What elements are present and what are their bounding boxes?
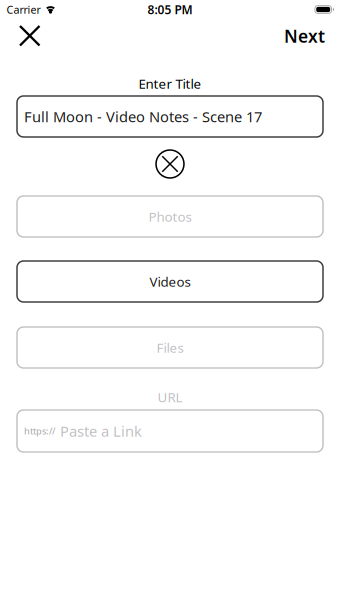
button[interactable]: Next (270, 18, 340, 55)
staticText: URL (157, 388, 182, 406)
staticText: Photos (148, 208, 191, 225)
staticText: 8:05 PM (147, 1, 192, 17)
button[interactable]: Files (17, 327, 323, 368)
staticText: https:// (24, 425, 55, 437)
button[interactable]: Close (0, 20, 53, 54)
button[interactable]: Clear title (148, 147, 192, 181)
button[interactable]: Photos (17, 196, 323, 237)
staticText: Full Moon - Video Notes - Scene 17 (24, 107, 262, 126)
staticText: Next (284, 24, 325, 47)
staticText: Enter Title (138, 75, 201, 92)
staticText: Videos (149, 273, 190, 290)
button[interactable]: Videos (17, 261, 323, 302)
staticText: Carrier (6, 2, 40, 17)
staticText: Files (156, 339, 183, 356)
staticText: Paste a Link (60, 421, 142, 441)
